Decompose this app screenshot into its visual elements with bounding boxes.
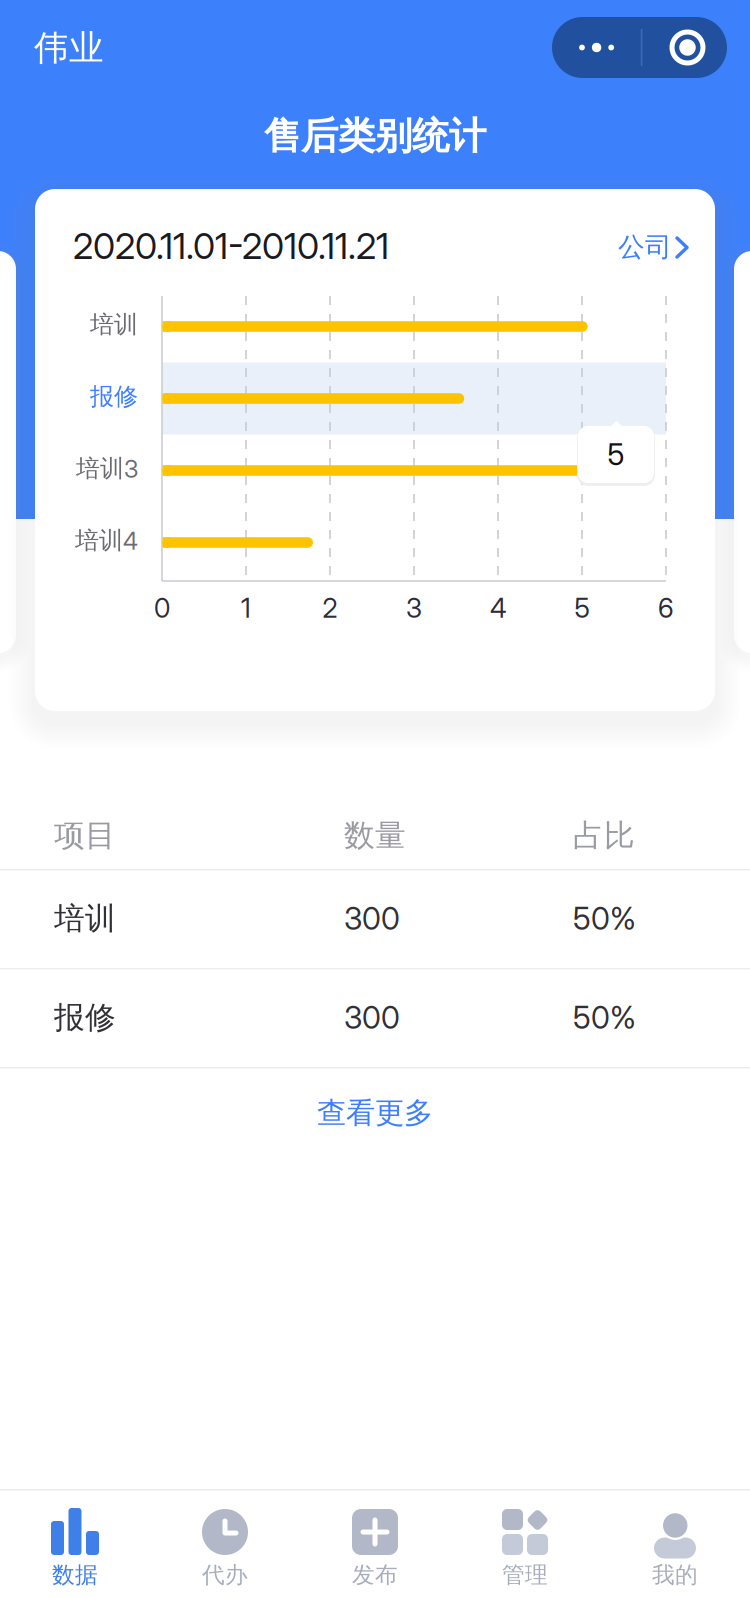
staticText: 项目 [54,816,116,855]
staticText: 数据 [52,1561,98,1589]
button[interactable]: 代办 [150,1489,300,1598]
staticText: 5 [574,592,589,624]
staticText: 查看更多 [317,1094,433,1131]
staticText: 培训3 [76,453,138,484]
button[interactable]: 公司 [608,221,704,273]
staticText: 伟业 [34,26,104,70]
button[interactable]: 报修 [0,968,750,1067]
staticText: 占比 [573,816,635,855]
button[interactable]: 发布 [300,1489,450,1598]
staticText: 300 [344,900,400,937]
staticText: 50% [573,999,636,1036]
staticText: 1 [241,592,251,624]
staticText: 培训4 [75,525,138,556]
staticText: 数量 [344,816,406,855]
staticText: 2020.11.01-2010.11.21 [73,224,389,268]
staticText: 4 [490,592,506,624]
staticText: 管理 [502,1561,548,1589]
staticText: 6 [658,592,674,624]
button[interactable]: 我的 [600,1489,750,1598]
staticText: 2 [322,592,337,624]
staticText: 300 [344,999,400,1036]
staticText: 0 [154,592,170,624]
staticText: 代办 [202,1561,248,1589]
staticText: 5 [607,437,624,472]
staticText: 报修 [90,381,138,412]
button[interactable]: 查看更多 [0,1068,750,1158]
staticText: 公司 [618,230,672,264]
staticText: 报修 [54,998,116,1037]
staticText: 培训 [54,899,116,938]
staticText: 3 [406,592,422,624]
button[interactable]: 培训 [0,869,750,968]
staticText: 培训 [90,309,138,340]
staticText: 售后类别统计 [264,112,486,159]
button[interactable]: 小程序菜单 [552,17,727,78]
button[interactable]: 数据 [0,1489,150,1598]
staticText: 50% [573,900,636,937]
staticText: 我的 [652,1561,698,1589]
staticText: 发布 [352,1561,398,1589]
button[interactable]: 管理 [450,1489,600,1598]
